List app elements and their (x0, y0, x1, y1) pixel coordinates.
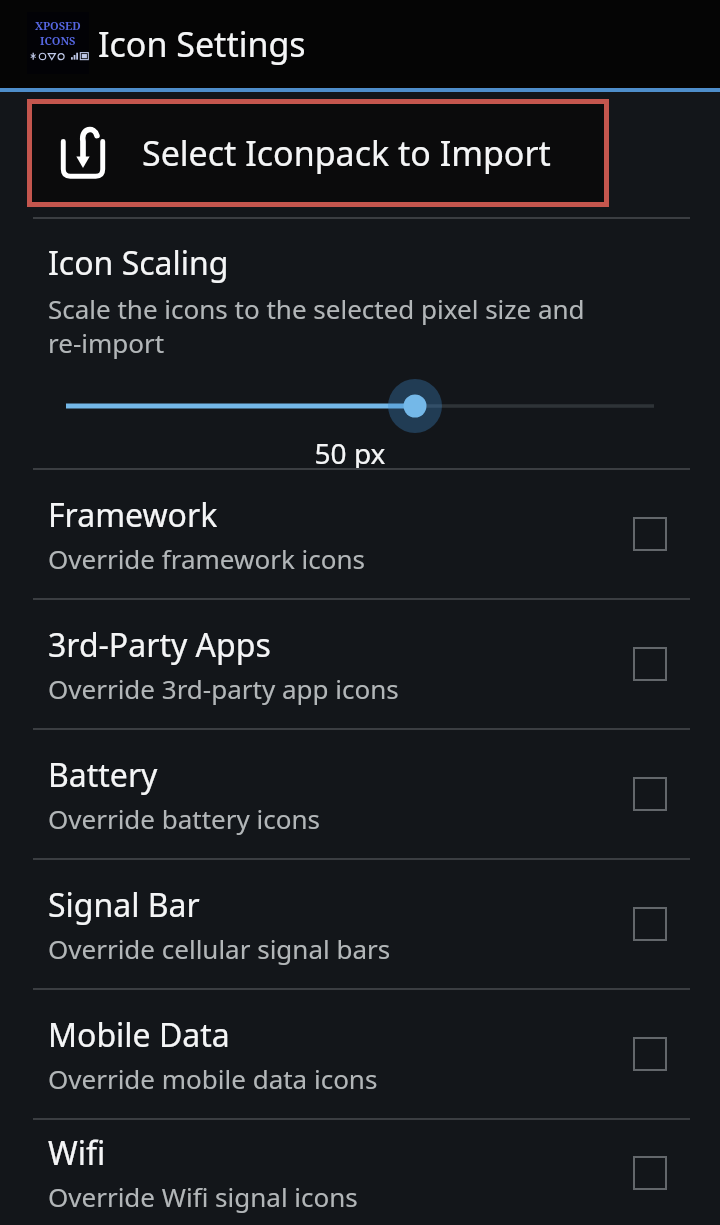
staticText: 3rd-Party Apps (48, 623, 271, 667)
staticText: Framework (48, 493, 218, 537)
button[interactable]: Signal Bar (0, 860, 720, 988)
button[interactable]: Battery (0, 730, 720, 858)
staticText: Signal Bar (48, 883, 200, 927)
staticText: Battery (48, 753, 158, 797)
button[interactable]: Mobile Data checkbox (612, 1016, 688, 1092)
staticText: Icon Scaling (48, 241, 229, 285)
staticText: Override mobile data icons (48, 1061, 378, 1096)
staticText: ICONS (40, 33, 76, 48)
button[interactable]: Select Iconpack to Import (27, 99, 609, 207)
button[interactable]: Icon Scaling (0, 219, 720, 468)
staticText: Wifi (48, 1131, 106, 1175)
button[interactable]: Icon size slider, 50 px (0, 378, 720, 434)
button[interactable]: Mobile Data (0, 990, 720, 1118)
staticText: Override framework icons (48, 541, 365, 576)
staticText: Icon Settings (98, 21, 306, 67)
staticText: Override cellular signal bars (48, 931, 391, 966)
button[interactable]: Wifi (0, 1120, 720, 1225)
staticText: Override 3rd-party app icons (48, 671, 399, 706)
staticText: Mobile Data (48, 1013, 230, 1057)
staticText: Scale the icons to the selected pixel si… (48, 291, 620, 360)
button[interactable]: 3rd-Party Apps (0, 600, 720, 728)
staticText: Select Iconpack to Import (142, 130, 551, 176)
staticText: Override battery icons (48, 801, 320, 836)
staticText: XPOSED (35, 18, 81, 33)
button[interactable]: Framework (0, 470, 720, 598)
staticText: 50 px (0, 434, 700, 468)
button[interactable]: Battery checkbox (612, 756, 688, 832)
button[interactable]: Framework checkbox (612, 496, 688, 572)
staticText: Override Wifi signal icons (48, 1179, 358, 1214)
button[interactable]: Wifi checkbox (612, 1135, 688, 1211)
button[interactable]: Signal Bar checkbox (612, 886, 688, 962)
button[interactable]: 3rd-Party Apps checkbox (612, 626, 688, 702)
